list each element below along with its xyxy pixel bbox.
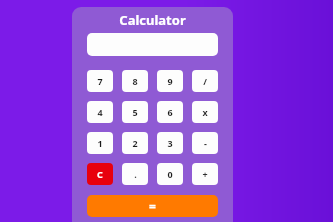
staticText: 7 [97,75,103,87]
staticText: 3 [167,137,173,149]
staticText: 6 [167,106,173,118]
button[interactable]: 0 [157,163,183,185]
staticText: 0 [167,168,173,180]
staticText: = [149,198,156,214]
staticText: - [204,137,207,149]
button[interactable]: + [192,163,218,185]
button[interactable]: x [192,101,218,123]
button[interactable]: 8 [122,70,148,92]
staticText: + [202,168,208,180]
button[interactable]: 4 [87,101,113,123]
staticText: / [203,75,207,87]
button[interactable]: 1 [87,132,113,154]
staticText: 5 [132,106,138,118]
button[interactable]: / [192,70,218,92]
button[interactable]: 2 [122,132,148,154]
button[interactable]: 6 [157,101,183,123]
button[interactable]: 7 [87,70,113,92]
button[interactable] [87,33,218,56]
button[interactable]: 5 [122,101,148,123]
button[interactable]: - [192,132,218,154]
staticText: C [97,168,103,180]
button[interactable]: C [87,163,113,185]
staticText: 8 [132,75,138,87]
staticText: 1 [97,137,103,149]
staticText: Calculator [119,11,186,29]
button[interactable]: Equals [87,195,218,217]
staticText: 4 [97,106,103,118]
button[interactable]: . [122,163,148,185]
button[interactable]: 3 [157,132,183,154]
button[interactable]: 9 [157,70,183,92]
staticText: x [202,106,208,118]
staticText: 2 [132,137,138,149]
staticText: . [134,168,137,180]
staticText: 9 [167,75,173,87]
